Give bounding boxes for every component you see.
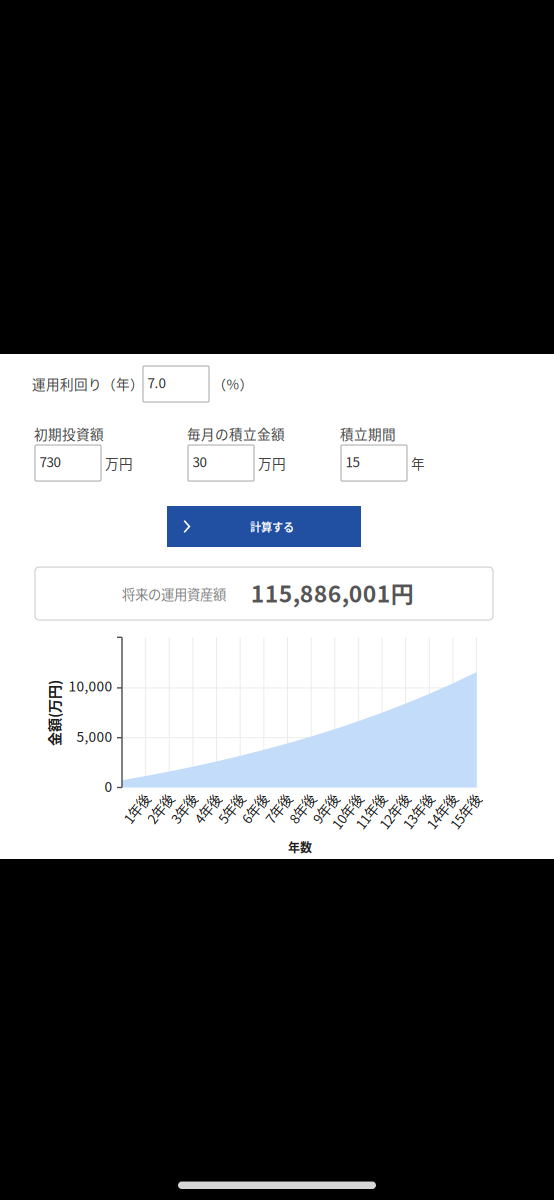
staticText: 7.0	[147, 373, 165, 392]
staticText: 115,886,001円	[251, 576, 414, 609]
button[interactable]: 730	[35, 445, 101, 481]
staticText: 万円	[105, 453, 133, 473]
staticText: 積立期間	[340, 424, 396, 443]
staticText: 将来の運用資産額	[122, 584, 226, 603]
staticText: 14年後	[414, 786, 454, 805]
staticText: 初期投資額	[34, 424, 104, 443]
staticText: 万円	[258, 453, 286, 473]
staticText: 13年後	[390, 786, 430, 805]
staticText: 金額(万円)	[21, 703, 87, 723]
staticText: 年	[411, 453, 425, 473]
staticText: 6年後	[232, 786, 265, 805]
staticText: 計算する	[250, 518, 294, 535]
button[interactable]: 計算する	[167, 506, 361, 547]
staticText: 年数	[288, 838, 312, 856]
button[interactable]: 30	[188, 445, 254, 481]
staticText: 9年後	[303, 786, 336, 805]
staticText: 5,000	[76, 726, 112, 746]
staticText: 7年後	[255, 786, 288, 805]
staticText: 10年後	[319, 786, 359, 805]
staticText: 730	[39, 452, 60, 471]
staticText: 1年後	[114, 786, 147, 805]
staticText: 5年後	[208, 786, 241, 805]
staticText: 12年後	[367, 786, 407, 805]
staticText: 毎月の積立金額	[187, 424, 285, 443]
staticText: 11年後	[343, 786, 383, 805]
staticText: 4年後	[185, 786, 218, 805]
staticText: （%）	[212, 374, 253, 393]
staticText: 0	[104, 776, 112, 796]
staticText: 2年後	[137, 786, 170, 805]
button[interactable]: 7.0	[143, 366, 209, 402]
staticText: 運用利回り（年）	[32, 374, 144, 393]
button[interactable]: 15	[341, 445, 407, 481]
staticText: 10,000	[68, 676, 112, 695]
staticText: 8年後	[279, 786, 312, 805]
staticText: 15	[345, 452, 359, 471]
staticText: 15年後	[438, 786, 478, 805]
staticText: 3年後	[161, 786, 194, 805]
staticText: 30	[192, 452, 206, 471]
